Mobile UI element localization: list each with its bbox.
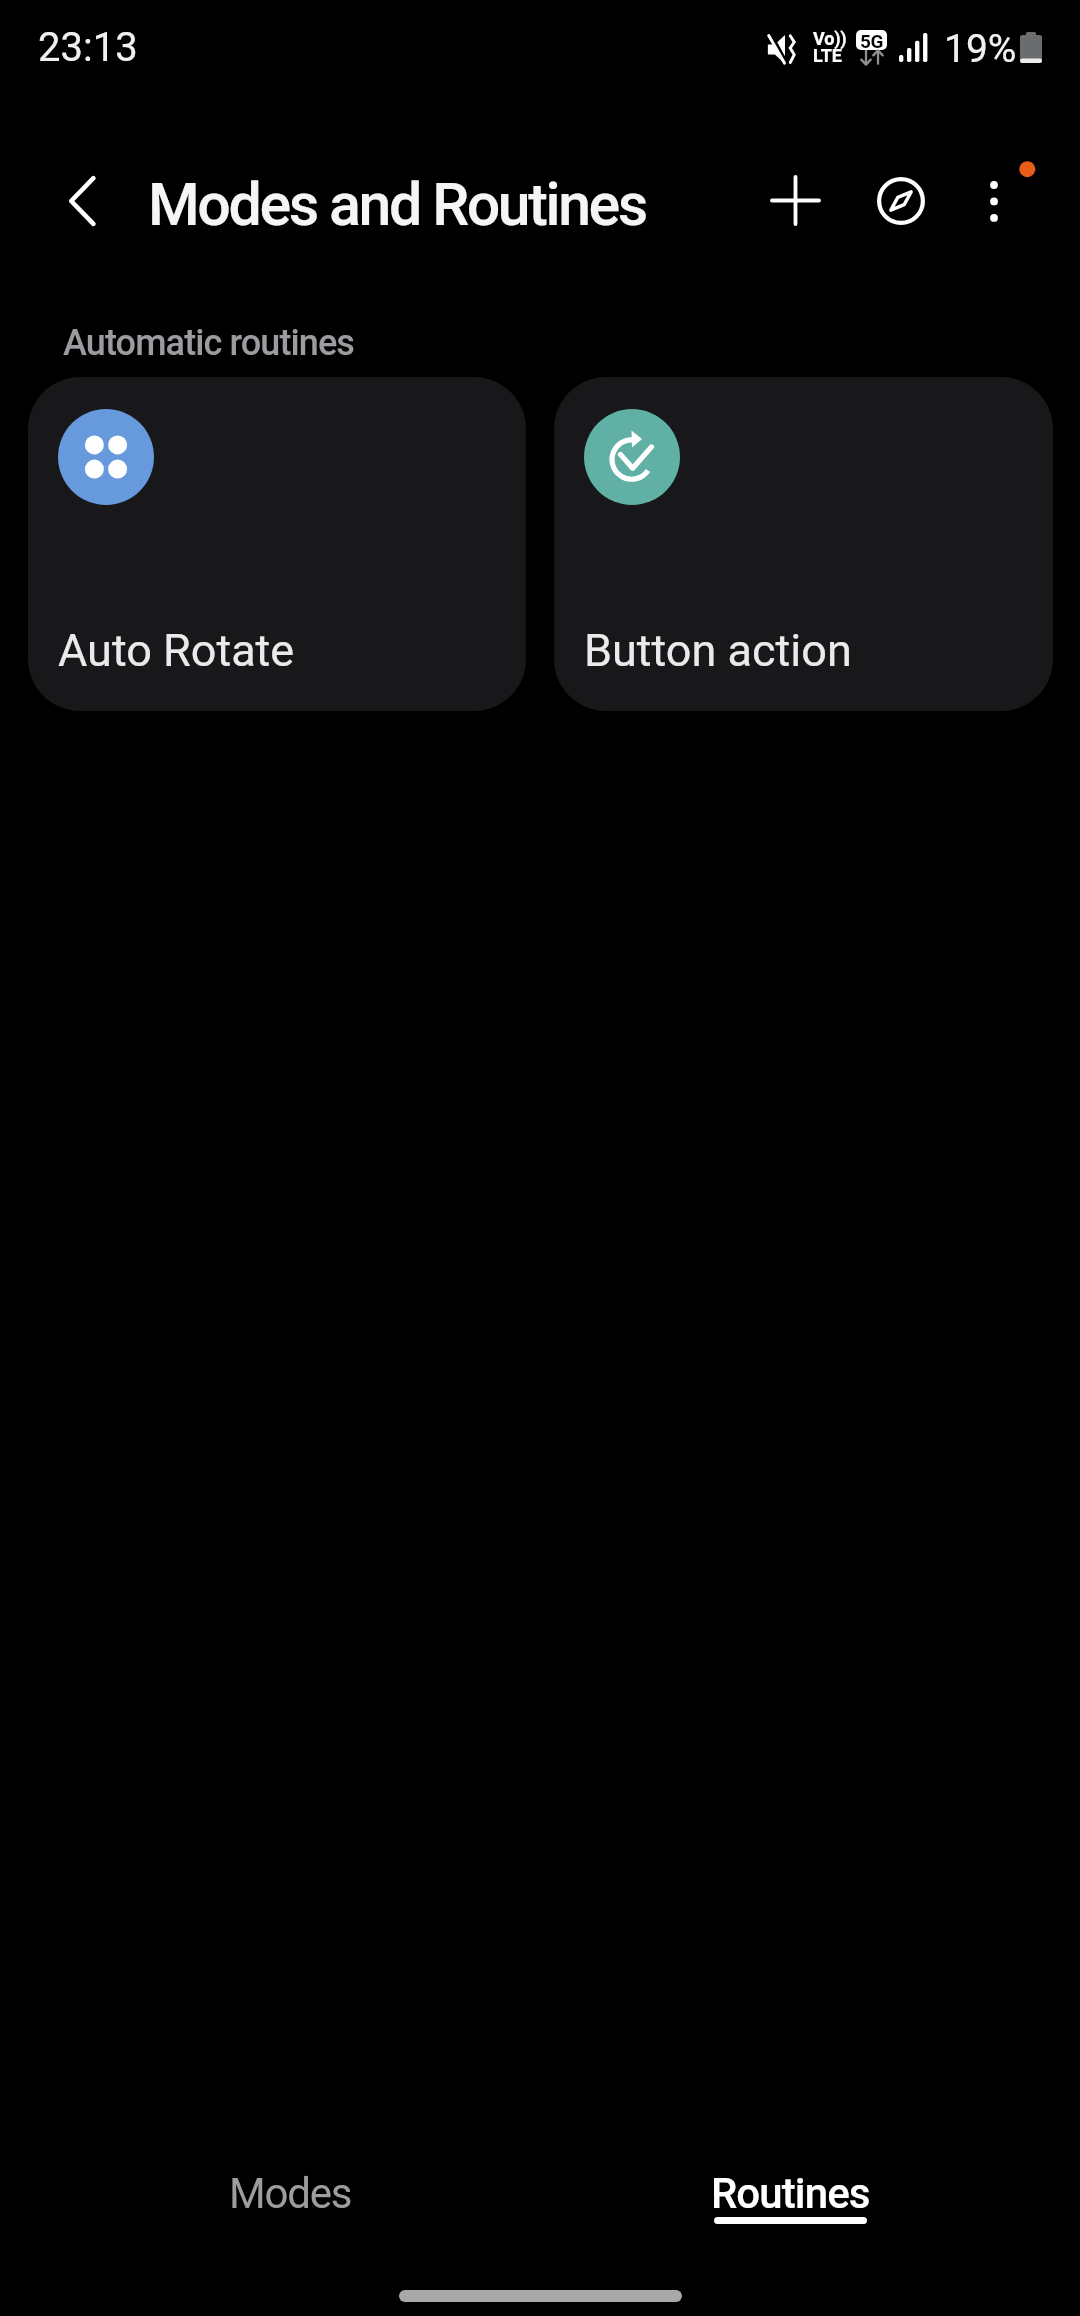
staticText: Routines	[711, 2169, 870, 2218]
staticText: 19%	[944, 26, 1017, 72]
button[interactable]: Navigate up	[34, 153, 130, 249]
button[interactable]: More options	[946, 152, 1043, 249]
button[interactable]: Modes	[40, 2150, 540, 2260]
staticText: 5G	[860, 30, 884, 50]
staticText: Modes	[229, 2169, 352, 2218]
staticText: LTE	[813, 45, 842, 66]
button[interactable]: Button action	[554, 377, 1053, 711]
button[interactable]: Routines	[540, 2150, 1040, 2260]
staticText: Modes and Routines	[148, 170, 646, 239]
staticText: Button action	[584, 624, 852, 677]
button[interactable]: Discover routines	[852, 152, 949, 249]
button[interactable]: Auto Rotate	[28, 377, 526, 711]
staticText: Automatic routines	[63, 322, 355, 364]
staticText: Vo))	[813, 28, 847, 49]
staticText: 23:13	[38, 24, 138, 71]
button[interactable]: Add routine	[747, 152, 844, 249]
staticText: Auto Rotate	[58, 624, 295, 677]
